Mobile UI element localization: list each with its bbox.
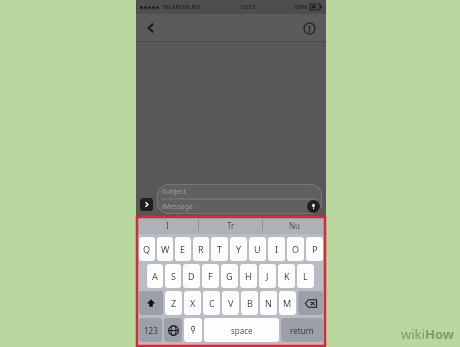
button[interactable]: return (281, 318, 323, 342)
button[interactable]: X (184, 291, 201, 315)
staticText: I (166, 220, 169, 231)
button[interactable]: L (297, 264, 314, 288)
button[interactable]: Details (298, 17, 320, 39)
staticText: H (245, 270, 252, 282)
staticText: Subject (162, 187, 187, 197)
staticText: T (217, 243, 223, 255)
staticText: E (180, 243, 186, 255)
button[interactable]: Subject (157, 184, 322, 214)
staticText: F (208, 270, 213, 282)
staticText: R (198, 243, 204, 255)
button[interactable]: Tr (199, 216, 262, 234)
staticText: N (265, 297, 272, 309)
button[interactable]: Dictate (184, 318, 202, 342)
staticText: How (425, 325, 454, 343)
button[interactable]: Shift (139, 291, 163, 315)
button[interactable]: B (241, 291, 258, 315)
staticText: P (312, 243, 318, 255)
staticText: space (231, 325, 253, 336)
staticText: TELEKOM.RO (162, 3, 201, 11)
button[interactable]: S (165, 264, 181, 288)
button[interactable]: K (278, 264, 295, 288)
staticText: I (275, 243, 279, 255)
button[interactable]: V (222, 291, 239, 315)
button[interactable]: R (193, 237, 209, 261)
button[interactable]: C (203, 291, 220, 315)
staticText: L (303, 270, 308, 282)
button[interactable]: P (306, 237, 323, 261)
button[interactable]: D (183, 264, 200, 288)
staticText: K (284, 270, 290, 282)
staticText: 123 (144, 325, 158, 336)
button[interactable]: Change keyboard (164, 318, 182, 342)
button[interactable]: Delete (298, 291, 323, 315)
button[interactable]: More options (140, 198, 153, 211)
staticText: U (254, 243, 261, 255)
button[interactable]: J (259, 264, 276, 288)
button[interactable]: A (147, 264, 163, 288)
button[interactable]: Back (140, 17, 162, 39)
staticText: X (190, 297, 196, 309)
button[interactable]: Record audio (307, 200, 320, 213)
button[interactable]: Y (230, 237, 247, 261)
staticText: return (290, 325, 314, 336)
button[interactable]: O (287, 237, 304, 261)
staticText: 60% (295, 3, 308, 11)
button[interactable]: N (260, 291, 277, 315)
button[interactable]: H (240, 264, 257, 288)
staticText: O (292, 243, 300, 255)
staticText: J (266, 270, 269, 282)
button[interactable]: Z (165, 291, 182, 315)
button[interactable]: space (204, 318, 279, 342)
staticText: C (209, 297, 215, 309)
staticText: Y (236, 243, 242, 255)
button[interactable]: Nu (263, 216, 326, 234)
button[interactable]: F (202, 264, 219, 288)
staticText: B (247, 297, 253, 309)
staticText: S (171, 270, 176, 282)
staticText: M (283, 297, 292, 309)
button[interactable]: E (175, 237, 191, 261)
staticText: G (226, 270, 233, 282)
button[interactable]: 123 (139, 318, 162, 342)
staticText: Tr (227, 220, 235, 231)
button[interactable]: G (221, 264, 238, 288)
staticText: Q (143, 243, 151, 255)
button[interactable]: T (211, 237, 228, 261)
button[interactable]: Q (139, 237, 155, 261)
button[interactable]: W (157, 237, 173, 261)
staticText: Z (171, 297, 177, 309)
button[interactable]: I (136, 216, 198, 234)
button[interactable]: M (279, 291, 296, 315)
staticText: iMessage (162, 202, 193, 212)
staticText: A (152, 270, 158, 282)
staticText: Nu (289, 220, 301, 231)
button[interactable]: I (268, 237, 285, 261)
staticText: V (228, 297, 234, 309)
staticText: D (188, 270, 195, 282)
button[interactable]: U (249, 237, 266, 261)
staticText: wiki (401, 325, 425, 343)
staticText: 15:57 (240, 3, 256, 11)
staticText: W (161, 243, 170, 255)
